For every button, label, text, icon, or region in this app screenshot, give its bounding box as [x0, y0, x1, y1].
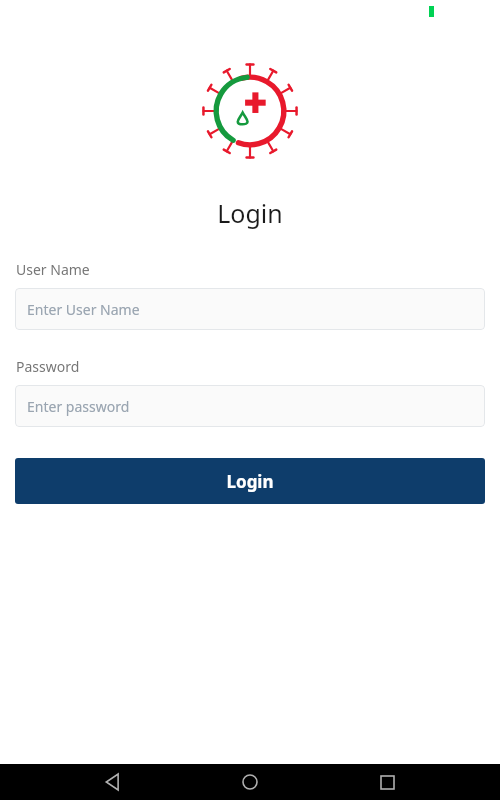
staticText: Enter password — [27, 397, 130, 416]
staticText: Enter User Name — [27, 300, 140, 319]
button[interactable]: Enter User Name — [15, 288, 485, 330]
button[interactable]: Login — [15, 458, 485, 504]
button[interactable]: Back — [89, 764, 137, 800]
staticText: Login — [217, 196, 283, 230]
staticText: Password — [16, 357, 80, 376]
staticText: Login — [226, 470, 274, 493]
button[interactable]: Home — [226, 764, 274, 800]
button[interactable]: Enter password — [15, 385, 485, 427]
staticText: User Name — [16, 260, 90, 279]
button[interactable]: Recent apps — [363, 764, 411, 800]
